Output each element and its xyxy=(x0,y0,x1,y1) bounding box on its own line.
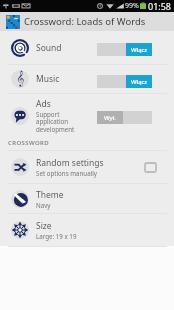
staticText: Music xyxy=(36,73,60,85)
staticText: Włącz xyxy=(131,78,148,86)
button[interactable]: Enabled xyxy=(97,43,152,56)
staticText: Ads xyxy=(36,98,51,110)
button[interactable]: Sound xyxy=(0,31,174,64)
button[interactable]: Random settings xyxy=(0,151,174,183)
button[interactable]: 𝄞 xyxy=(0,65,174,93)
staticText: 01:58 xyxy=(148,0,172,12)
staticText: Set options manually xyxy=(36,169,97,177)
staticText: Wył. xyxy=(104,114,116,122)
button[interactable]: Theme xyxy=(0,184,174,213)
staticText: Sound xyxy=(36,42,62,54)
staticText: CROSSWORD xyxy=(8,139,49,147)
staticText: Theme xyxy=(36,189,64,201)
staticText: Crossword: Loads of Words xyxy=(24,15,146,28)
staticText: Size xyxy=(36,220,52,232)
button[interactable]: Random settings checkbox xyxy=(140,157,160,177)
button[interactable]: Size xyxy=(0,214,174,246)
staticText: 99% xyxy=(125,1,139,11)
staticText: 𝄞 xyxy=(16,72,25,86)
staticText: Włącz xyxy=(131,46,148,54)
button[interactable]: Ads xyxy=(0,94,174,137)
staticText: Support application development xyxy=(36,110,75,134)
staticText: Navy xyxy=(36,201,51,209)
staticText: Random settings xyxy=(36,157,104,169)
button[interactable]: Enabled xyxy=(97,75,152,88)
staticText: Large: 19 x 19 xyxy=(36,232,77,240)
button[interactable]: App icon xyxy=(6,15,20,29)
button[interactable]: Disabled xyxy=(97,111,152,124)
